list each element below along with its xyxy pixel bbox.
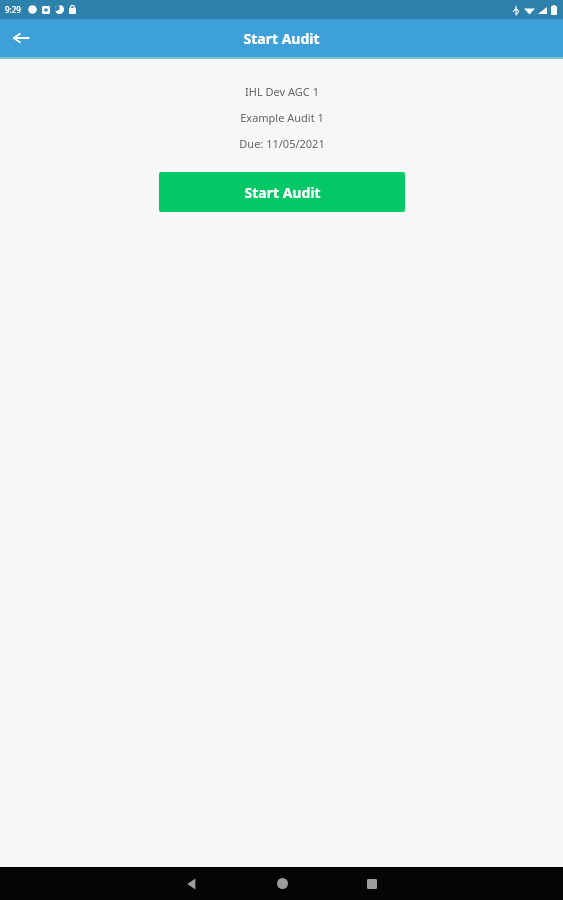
button[interactable]: Recent apps [349, 867, 395, 900]
staticText: Example Audit 1 [240, 110, 324, 125]
staticText: 9:29 [5, 4, 21, 15]
staticText: Due: 11/05/2021 [239, 136, 325, 151]
button[interactable]: Back [169, 867, 215, 900]
button[interactable]: Home [259, 867, 305, 900]
staticText: Start Audit [243, 29, 320, 48]
staticText: Start Audit [244, 183, 321, 202]
button[interactable]: Back [4, 21, 38, 55]
staticText: IHL Dev AGC 1 [245, 84, 319, 99]
button[interactable]: Start Audit [159, 172, 405, 212]
